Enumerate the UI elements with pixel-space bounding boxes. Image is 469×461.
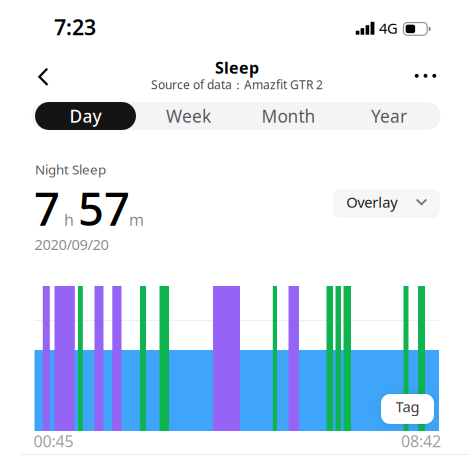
staticText: 57 xyxy=(78,178,130,238)
staticText: h xyxy=(64,209,74,230)
staticText: 7:23 xyxy=(54,13,96,41)
staticText: 7 xyxy=(34,178,60,238)
staticText: Source of data：Amazfit GTR 2 xyxy=(151,76,323,92)
button[interactable]: Year xyxy=(339,102,439,130)
staticText: 00:45 xyxy=(33,430,73,452)
staticText: Week xyxy=(166,104,211,127)
staticText: Tag xyxy=(395,397,419,416)
staticText: Month xyxy=(261,104,315,127)
staticText: Day xyxy=(69,104,101,127)
staticText: 2020/09/20 xyxy=(34,234,108,254)
staticText: m xyxy=(129,209,144,230)
staticText: Night Sleep xyxy=(35,160,106,178)
button[interactable]: Overlay xyxy=(333,189,440,218)
staticText: Year xyxy=(371,104,407,127)
staticText: Overlay xyxy=(346,192,397,212)
button[interactable]: Day xyxy=(35,102,136,130)
button[interactable] xyxy=(39,69,48,85)
button[interactable] xyxy=(407,61,443,91)
button[interactable]: Tag xyxy=(381,394,434,424)
button[interactable]: Week xyxy=(138,102,238,130)
staticText: Sleep xyxy=(215,57,259,78)
button[interactable]: Month xyxy=(238,102,338,130)
staticText: 4G xyxy=(379,18,398,38)
staticText: 08:42 xyxy=(401,430,441,452)
